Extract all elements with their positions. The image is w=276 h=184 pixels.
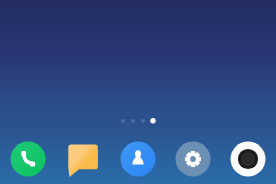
button[interactable]: Settings [175, 141, 211, 177]
button[interactable]: Phone [10, 141, 46, 177]
button[interactable]: Camera [230, 141, 266, 177]
button[interactable]: Contacts [120, 141, 156, 177]
button[interactable]: Messages [65, 141, 101, 181]
